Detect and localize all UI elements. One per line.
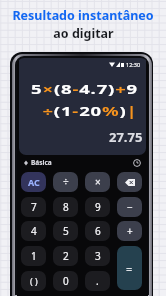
button[interactable]: 8 bbox=[53, 197, 78, 217]
staticText: ( ) bbox=[30, 275, 38, 287]
button[interactable]: 5 bbox=[53, 221, 78, 241]
staticText: 8 bbox=[63, 200, 69, 214]
button[interactable]: − bbox=[117, 197, 142, 217]
button[interactable]: Delete bbox=[117, 172, 142, 192]
button[interactable]: 0 bbox=[53, 271, 78, 291]
staticText: . bbox=[96, 274, 99, 288]
staticText: Resultado instantâneo bbox=[12, 7, 154, 24]
button[interactable]: × bbox=[85, 172, 110, 192]
staticText: Básica bbox=[31, 158, 52, 167]
staticText: AC bbox=[28, 176, 40, 188]
staticText: 9 bbox=[95, 200, 101, 214]
button[interactable]: 6 bbox=[85, 221, 110, 241]
button[interactable]: 4 bbox=[21, 221, 46, 241]
button[interactable]: 3 bbox=[85, 246, 110, 266]
button[interactable]: 2 bbox=[53, 246, 78, 266]
button[interactable]: AC bbox=[21, 172, 46, 192]
staticText: 5×(8-4.7)+9 bbox=[31, 80, 139, 98]
other: Delete bbox=[125, 179, 135, 186]
staticText: × bbox=[95, 175, 101, 189]
staticText: 4 bbox=[31, 224, 37, 238]
staticText: + bbox=[127, 224, 133, 238]
button[interactable]: 7 bbox=[21, 197, 46, 217]
staticText: 12:30 bbox=[126, 61, 141, 68]
staticText: 6 bbox=[95, 224, 101, 238]
button[interactable]: = bbox=[117, 246, 142, 290]
button[interactable]: History bbox=[131, 157, 142, 168]
button[interactable]: 9 bbox=[85, 197, 110, 217]
button[interactable]: + bbox=[117, 221, 142, 241]
staticText: − bbox=[127, 200, 133, 214]
staticText: 27.75 bbox=[109, 128, 143, 146]
staticText: ao digitar bbox=[53, 25, 114, 42]
staticText: ÷ bbox=[63, 175, 69, 189]
staticText: 5 bbox=[63, 224, 69, 238]
staticText: = bbox=[126, 261, 133, 276]
staticText: 3 bbox=[95, 249, 101, 263]
staticText: 0 bbox=[63, 274, 69, 288]
button[interactable]: Básica bbox=[23, 158, 52, 167]
button[interactable]: . bbox=[85, 271, 110, 291]
staticText: 7 bbox=[31, 200, 37, 214]
button[interactable]: ÷ bbox=[53, 172, 78, 192]
staticText: 1 bbox=[31, 249, 37, 263]
button[interactable]: ( ) bbox=[21, 271, 46, 291]
staticText: 2 bbox=[63, 249, 69, 263]
staticText: ÷(1-20%)| bbox=[42, 102, 139, 120]
button[interactable]: 1 bbox=[21, 246, 46, 266]
